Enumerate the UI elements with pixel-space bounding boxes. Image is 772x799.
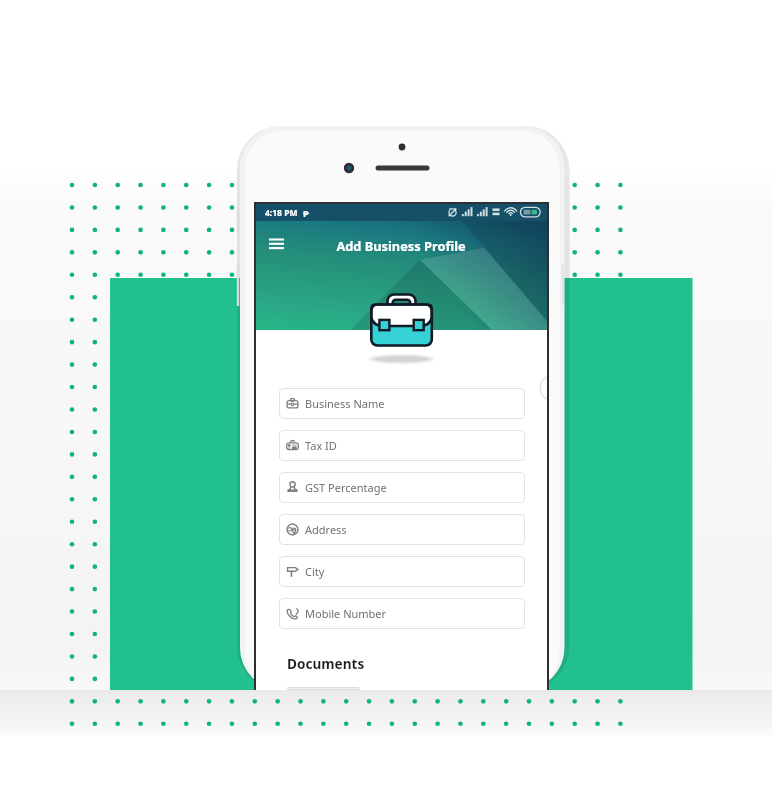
- staticText: Address: [305, 522, 347, 537]
- staticText: Business Name: [305, 396, 385, 411]
- staticText: City: [305, 564, 325, 579]
- button[interactable]: Business Name: [279, 388, 525, 419]
- staticText: Mobile Number: [305, 606, 387, 621]
- staticText: P: [303, 207, 309, 217]
- staticText: Documents: [287, 654, 365, 673]
- button[interactable]: [287, 687, 360, 690]
- button[interactable]: GST Percentage: [279, 472, 525, 503]
- staticText: GST Percentage: [305, 480, 387, 495]
- button[interactable]: Tax ID: [279, 430, 525, 461]
- staticText: Add Business Profile: [291, 237, 511, 254]
- button[interactable]: City: [279, 556, 525, 587]
- staticText: Tax ID: [305, 438, 337, 453]
- button[interactable]: Open navigation menu: [261, 228, 291, 258]
- button[interactable]: Mobile Number: [279, 598, 525, 629]
- staticText: 4:18 PM: [265, 207, 298, 219]
- button[interactable]: Address: [279, 514, 525, 545]
